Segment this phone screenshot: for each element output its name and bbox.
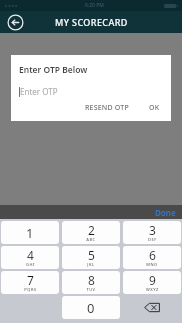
- staticText: TUV: [86, 287, 96, 292]
- staticText: 1: [26, 224, 34, 242]
- button[interactable]: 6: [123, 246, 181, 269]
- staticText: 5: [88, 247, 95, 263]
- button[interactable]: 9: [123, 271, 181, 294]
- staticText: 2: [88, 222, 95, 238]
- staticText: 3: [149, 222, 156, 238]
- button[interactable]: 2: [62, 221, 120, 244]
- staticText: 7: [27, 272, 34, 288]
- staticText: PQRS: [24, 287, 37, 292]
- staticText: DEF: [148, 237, 157, 242]
- button[interactable]: 1: [1, 221, 59, 244]
- button[interactable]: Done: [149, 205, 182, 219]
- button[interactable]: 3: [123, 221, 181, 244]
- staticText: ABC: [86, 237, 96, 242]
- staticText: 0: [87, 299, 95, 317]
- staticText: MY SCORECARD: [55, 16, 128, 28]
- button[interactable]: Backspace: [123, 296, 181, 319]
- staticText: 6: [149, 247, 156, 263]
- staticText: 9: [149, 272, 156, 288]
- staticText: Done: [155, 207, 176, 217]
- staticText: RESEND OTP: [85, 103, 129, 113]
- button[interactable]: Back: [7, 14, 24, 31]
- button[interactable]: OK: [146, 101, 163, 115]
- button[interactable]: 7: [1, 271, 59, 294]
- staticText: Enter OTP: [20, 86, 58, 97]
- staticText: GHI: [26, 262, 35, 267]
- staticText: MNO: [146, 262, 158, 267]
- staticText: 8: [88, 272, 95, 288]
- staticText: JKL: [87, 262, 95, 267]
- staticText: Enter OTP Below: [19, 64, 88, 76]
- staticText: OK: [149, 103, 160, 113]
- staticText: WXYZ: [146, 287, 159, 292]
- button[interactable]: 0: [62, 296, 120, 319]
- button[interactable]: 5: [62, 246, 120, 269]
- staticText: 6:20 PM: [85, 2, 104, 9]
- button[interactable]: RESEND OTP: [82, 101, 132, 115]
- button[interactable]: 8: [62, 271, 120, 294]
- button[interactable]: 4: [1, 246, 59, 269]
- staticText: 4: [27, 247, 34, 263]
